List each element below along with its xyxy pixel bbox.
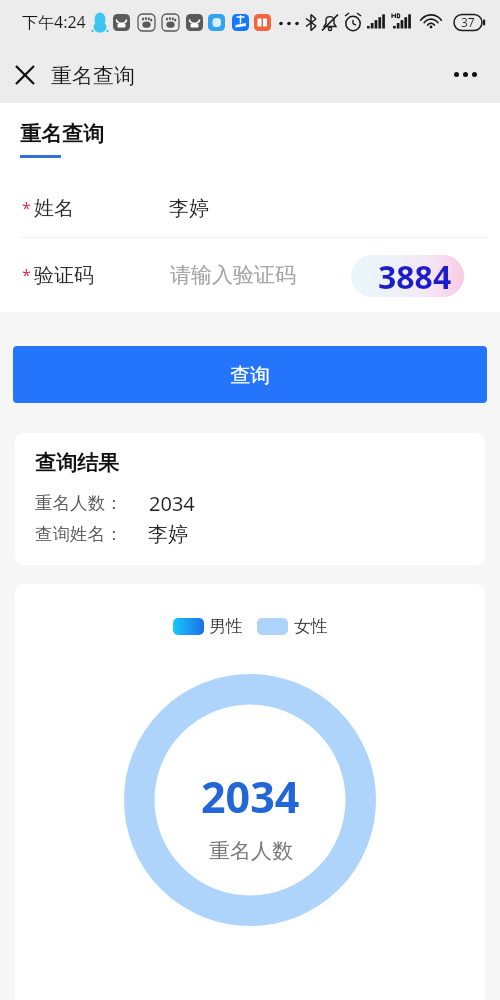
staticText: 3884 xyxy=(378,255,452,297)
staticText: * xyxy=(22,197,31,219)
staticText: 验证码 xyxy=(34,263,94,288)
button[interactable]: 查询 xyxy=(13,346,487,403)
button[interactable]: More options xyxy=(454,54,477,94)
staticText: 男性 xyxy=(209,616,243,637)
staticText: 下午4:24 xyxy=(22,11,86,33)
staticText: 查询结果 xyxy=(35,450,119,476)
staticText: 姓名 xyxy=(34,196,74,221)
staticText: 李婷 xyxy=(148,522,188,547)
staticText: 2034 xyxy=(149,490,195,516)
staticText: 女性 xyxy=(294,616,328,637)
staticText: 重名查询 xyxy=(51,63,135,89)
staticText: 李婷 xyxy=(169,196,209,221)
button[interactable]: Close xyxy=(6,56,44,94)
staticText: 重名人数 xyxy=(209,838,293,864)
staticText: 重名查询 xyxy=(20,121,104,147)
staticText: 37 xyxy=(461,14,475,30)
button[interactable]: * xyxy=(22,179,480,237)
staticText: 查询姓名： xyxy=(35,523,123,545)
staticText: 请输入验证码 xyxy=(170,262,296,288)
staticText: 查询 xyxy=(230,363,270,388)
staticText: 重名人数： xyxy=(35,492,123,514)
staticText: 2034 xyxy=(201,767,300,826)
staticText: * xyxy=(22,264,31,286)
button[interactable]: * xyxy=(22,238,464,312)
button[interactable]: 3884 xyxy=(351,255,464,297)
